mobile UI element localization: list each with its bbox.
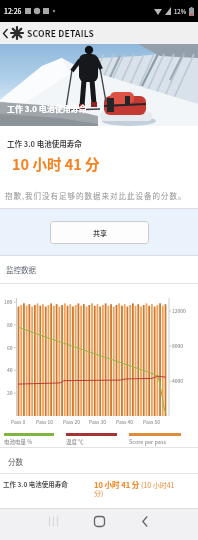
staticText: 抱歉,我们没有足够的数据来对比此设备的分数。 — [5, 190, 187, 201]
staticText: 60 — [7, 344, 13, 351]
staticText: Pass 10 — [36, 418, 54, 425]
staticText: 80 — [7, 321, 13, 328]
staticText: 8000 — [172, 342, 184, 349]
staticText: 10 小时 41 分 — [12, 153, 100, 174]
staticText: 温度 ℃ — [66, 438, 84, 446]
staticText: 10 小时 41 分 (10 小时41 分) — [94, 479, 182, 498]
staticText: 工作 3.0 电池使用寿命 — [7, 138, 82, 149]
staticText: 20 — [7, 389, 13, 396]
staticText: 工作 3.0 电池使用寿命 — [7, 103, 87, 115]
staticText: Pass 0 — [11, 418, 26, 425]
button[interactable] — [0, 22, 10, 44]
staticText: 4000 — [172, 377, 184, 384]
staticText: Pass 50 — [143, 418, 161, 425]
button[interactable]: 共享 — [50, 221, 149, 244]
staticText: Pass 20 — [63, 418, 81, 425]
staticText: Score per pass — [129, 438, 167, 446]
staticText: Pass 40 — [116, 418, 134, 425]
button[interactable] — [128, 505, 162, 537]
staticText: 电池电量 % — [4, 438, 33, 446]
staticText: 监控数据 — [6, 264, 36, 275]
button[interactable]: 工作 3.0 电池使用寿命 — [0, 474, 198, 498]
staticText: Pass 30 — [89, 418, 107, 425]
staticText: 100 — [4, 298, 13, 305]
button[interactable] — [36, 505, 70, 537]
staticText: 40 — [7, 366, 13, 373]
button[interactable] — [82, 505, 116, 537]
staticText: SCORE DETAILS — [27, 27, 95, 39]
staticText: 12000 — [172, 307, 186, 314]
staticText: 分数 — [8, 456, 23, 467]
staticText: 12% — [174, 7, 187, 16]
staticText: 12:26 — [4, 6, 22, 16]
staticText: 工作 3.0 电池使用寿命 — [3, 479, 90, 488]
staticText: 共享 — [93, 228, 107, 238]
